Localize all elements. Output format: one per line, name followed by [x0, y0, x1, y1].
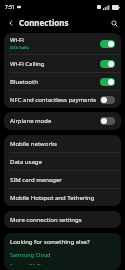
button[interactable]: Bluetooth [4, 73, 121, 90]
button[interactable]: Toggle off [100, 117, 115, 125]
staticText: Samsung Cloud [10, 251, 51, 258]
button[interactable]: Wi-Fi Calling [4, 55, 121, 72]
button[interactable]: Toggle on [100, 40, 115, 48]
button[interactable]: SIM card manager [4, 171, 121, 188]
button[interactable]: NFC and contactless payments [4, 91, 121, 108]
button[interactable]: Toggle off [100, 96, 115, 104]
button[interactable]: Mobile Hotspot and Tethering [4, 189, 121, 206]
button[interactable]: Airplane mode [4, 112, 121, 130]
button[interactable]: Samsung Cloud [10, 251, 115, 258]
button[interactable]: Wi-Fi [4, 33, 121, 54]
staticText: Secure Wi-Fi [10, 262, 42, 265]
staticText: Airplane mode [10, 117, 52, 125]
staticText: Looking for something else? [10, 238, 90, 246]
button[interactable]: Back [5, 17, 17, 29]
staticText: Wi-Fi [10, 36, 24, 44]
button[interactable]: More connection settings [4, 211, 121, 228]
button[interactable]: Toggle on [100, 78, 115, 86]
button[interactable]: Toggle on [100, 60, 115, 68]
staticText: SIM card manager [10, 176, 62, 184]
staticText: Bluetooth [10, 78, 38, 86]
staticText: Data usage [10, 158, 42, 166]
staticText: Mobile Hotspot and Tethering [10, 194, 95, 202]
button[interactable]: Mobile networks [4, 135, 121, 152]
staticText: DiGi Saifu [10, 45, 30, 51]
staticText: NFC and contactless payments [10, 96, 97, 104]
button[interactable]: Search [108, 17, 120, 29]
button[interactable]: Data usage [4, 153, 121, 170]
staticText: Connections [19, 17, 69, 28]
staticText: More connection settings [10, 216, 82, 224]
button[interactable]: Secure Wi-Fi [10, 262, 115, 265]
staticText: Mobile networks [10, 140, 57, 148]
staticText: 7:51 [5, 4, 15, 11]
staticText: Wi-Fi Calling [10, 60, 45, 68]
